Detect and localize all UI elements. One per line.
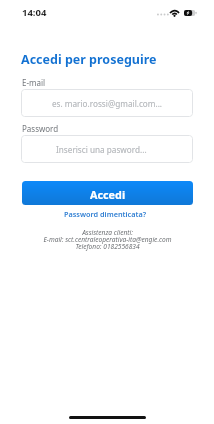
staticText: es. mario.rossi@gmail.com... [52,98,163,109]
staticText: E-mail [22,77,46,88]
button[interactable]: Password dimenticata? [64,209,147,219]
staticText: Assistenza clienti: E-mail: sct.centrale… [43,228,172,251]
staticText: Password [22,123,59,134]
staticText: 14:04 [22,6,47,19]
staticText: Accedi per proseguire [21,51,157,68]
button[interactable]: Accedi [22,181,193,205]
button[interactable]: es. mario.rossi@gmail.com... [21,89,193,117]
staticText: Inserisci una pasword... [56,144,147,155]
button[interactable]: Inserisci una pasword... [21,135,193,163]
staticText: Accedi [90,187,126,202]
